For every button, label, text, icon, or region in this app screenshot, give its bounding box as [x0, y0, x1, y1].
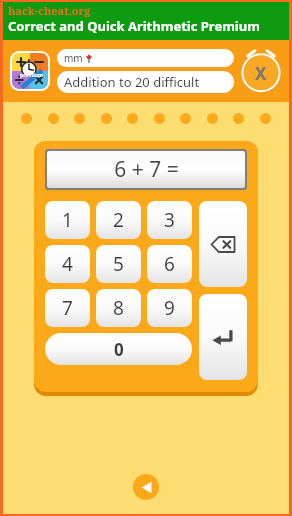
staticText: premium	[20, 72, 43, 79]
button[interactable]: Back	[133, 474, 159, 500]
button[interactable]: App icon	[12, 53, 48, 89]
staticText: Correct and Quick Arithmetic Premium	[8, 17, 260, 35]
staticText: 0	[114, 338, 124, 361]
button[interactable]: Close	[239, 49, 283, 93]
button[interactable]: Addition to 20 difficult	[57, 71, 234, 93]
staticText: 9	[164, 295, 175, 321]
staticText: 3	[164, 207, 175, 233]
staticText: 1	[62, 207, 73, 233]
staticText: 5	[113, 251, 124, 277]
button[interactable]: 6	[147, 245, 192, 283]
staticText: 6 + 7 =	[114, 155, 179, 184]
staticText: 8	[113, 295, 124, 321]
button[interactable]: 3	[147, 201, 192, 239]
button[interactable]: mm	[57, 49, 234, 67]
staticText: 6	[164, 251, 175, 277]
button[interactable]: 7	[45, 289, 90, 327]
staticText: mm	[64, 51, 83, 65]
staticText: Addition to 20 difficult	[64, 73, 200, 91]
button[interactable]: 0	[45, 333, 192, 365]
staticText: X	[255, 62, 267, 85]
staticText: 4	[62, 251, 73, 277]
button[interactable]: 1	[45, 201, 90, 239]
button[interactable]: 8	[96, 289, 141, 327]
button[interactable]: Backspace	[199, 201, 247, 287]
button[interactable]: 9	[147, 289, 192, 327]
button[interactable]: 5	[96, 245, 141, 283]
button[interactable]: 2	[96, 201, 141, 239]
staticText: hack-cheat.org	[8, 3, 91, 18]
button[interactable]: 4	[45, 245, 90, 283]
staticText: 2	[113, 207, 124, 233]
button[interactable]: Enter	[199, 294, 247, 380]
staticText: 7	[62, 295, 73, 321]
